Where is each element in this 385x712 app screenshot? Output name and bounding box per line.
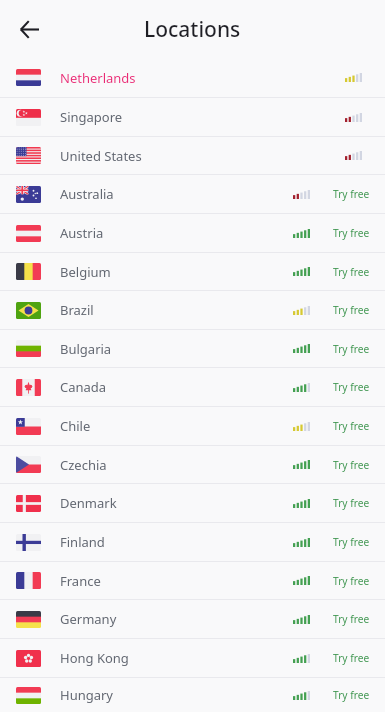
staticText: Bulgaria — [60, 340, 112, 358]
staticText: Try free — [333, 496, 370, 510]
button[interactable]: Belgium — [0, 253, 385, 290]
button[interactable]: Finland — [0, 523, 385, 561]
button[interactable]: Hong Kong — [0, 639, 385, 677]
staticText: United States — [60, 147, 142, 165]
staticText: Brazil — [60, 301, 94, 319]
button[interactable]: Bulgaria — [0, 330, 385, 367]
button[interactable]: Austria — [0, 214, 385, 252]
staticText: Hong Kong — [60, 649, 129, 667]
button[interactable]: Singapore — [0, 98, 385, 136]
staticText: Canada — [60, 378, 107, 396]
staticText: Chile — [60, 417, 91, 435]
staticText: Austria — [60, 224, 104, 242]
button[interactable]: Denmark — [0, 484, 385, 522]
staticText: Try free — [333, 688, 370, 702]
staticText: Try free — [333, 419, 370, 433]
staticText: Denmark — [60, 494, 117, 512]
button[interactable]: United States — [0, 137, 385, 174]
staticText: Try free — [333, 187, 370, 201]
staticText: Try free — [333, 651, 370, 665]
staticText: Australia — [60, 185, 114, 203]
staticText: Try free — [333, 612, 370, 626]
button[interactable]: Czechia — [0, 446, 385, 483]
staticText: Try free — [333, 303, 370, 317]
staticText: Czechia — [60, 456, 107, 474]
staticText: Singapore — [60, 108, 123, 126]
staticText: Try free — [333, 226, 370, 240]
button[interactable]: Back — [11, 11, 47, 47]
button[interactable]: Germany — [0, 600, 385, 638]
staticText: Germany — [60, 610, 117, 628]
button[interactable]: France — [0, 562, 385, 599]
button[interactable]: Netherlands — [0, 58, 385, 97]
staticText: Try free — [333, 265, 370, 279]
staticText: Try free — [333, 342, 370, 356]
staticText: Finland — [60, 533, 105, 551]
button[interactable]: Chile — [0, 407, 385, 445]
staticText: Try free — [333, 380, 370, 394]
staticText: Try free — [333, 574, 370, 588]
staticText: Belgium — [60, 263, 111, 281]
button[interactable]: Canada — [0, 368, 385, 406]
staticText: Netherlands — [60, 69, 136, 87]
staticText: Try free — [333, 458, 370, 472]
staticText: France — [60, 572, 101, 590]
staticText: Hungary — [60, 686, 113, 704]
button[interactable]: Hungary — [0, 678, 385, 712]
button[interactable]: Brazil — [0, 291, 385, 329]
staticText: Try free — [333, 535, 370, 549]
button[interactable]: Australia — [0, 175, 385, 213]
staticText: Locations — [144, 15, 241, 44]
